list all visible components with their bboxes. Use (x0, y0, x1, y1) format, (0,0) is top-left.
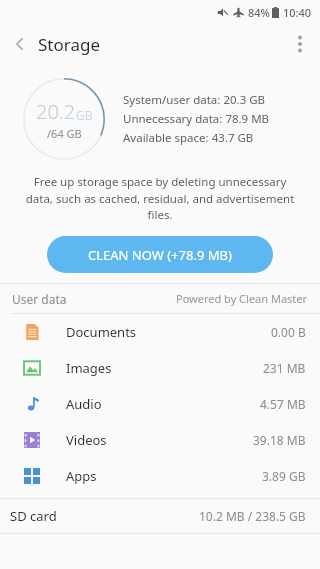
staticText: Free up storage space by deleting unnece… (22, 174, 298, 222)
staticText: 4.57 MB (260, 396, 306, 412)
staticText: 39.18 MB (253, 432, 306, 448)
button[interactable]: SD card (0, 499, 320, 533)
button[interactable]: CLEAN NOW (+78.9 MB) (47, 236, 273, 273)
staticText: Apps (66, 467, 97, 485)
staticText: System/user data: 20.3 GB (123, 92, 266, 108)
staticText: Powered by Clean Master (176, 291, 308, 306)
staticText: 84% (248, 5, 270, 20)
staticText: 231 MB (263, 360, 306, 376)
button[interactable]: Images (0, 350, 320, 386)
button[interactable]: Apps (0, 458, 320, 494)
button[interactable]: Videos (0, 422, 320, 458)
staticText: /64 GB (47, 126, 82, 141)
button[interactable]: Back (0, 24, 40, 64)
staticText: User data (12, 291, 67, 307)
button[interactable]: Documents (0, 314, 320, 350)
staticText: GB (76, 107, 93, 123)
staticText: 10:40 (283, 5, 312, 20)
staticText: Images (66, 359, 112, 377)
staticText: SD card (10, 507, 57, 525)
staticText: Storage (38, 33, 101, 56)
button[interactable]: Audio (0, 386, 320, 422)
staticText: Available space: 43.7 GB (123, 130, 254, 146)
staticText: 0.00 B (271, 324, 306, 340)
staticText: 10.2 MB / 238.5 GB (199, 508, 306, 524)
staticText: Audio (66, 395, 102, 413)
staticText: Unnecessary data: 78.9 MB (123, 111, 270, 127)
staticText: Videos (66, 431, 107, 449)
button[interactable]: More options (280, 24, 320, 64)
staticText: Documents (66, 323, 137, 341)
staticText: 3.89 GB (262, 468, 306, 484)
staticText: CLEAN NOW (+78.9 MB) (88, 246, 232, 264)
staticText: 20.2 (36, 98, 76, 125)
